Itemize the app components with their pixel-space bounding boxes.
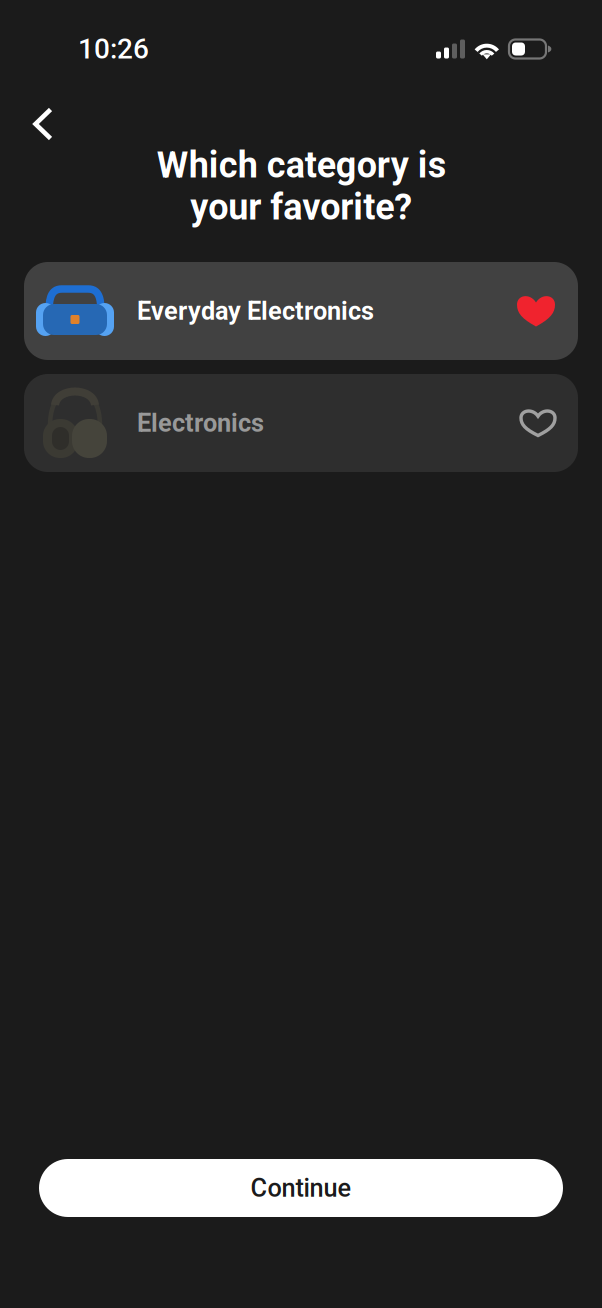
staticText: Everyday Electronics	[137, 296, 374, 326]
button[interactable]: Continue	[39, 1159, 563, 1217]
button[interactable]: Everyday Electronics	[24, 262, 578, 360]
staticText: Electronics	[137, 408, 264, 438]
button[interactable]: Back	[20, 94, 66, 154]
staticText: 10:26	[78, 33, 149, 65]
button[interactable]: Electronics	[24, 374, 578, 472]
staticText: Which category is your favorite?	[156, 144, 445, 228]
staticText: Continue	[250, 1173, 351, 1203]
